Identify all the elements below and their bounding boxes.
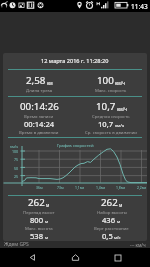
staticText: 800 [30,215,44,225]
button[interactable]: Back [21,248,43,267]
staticText: 10,7 [96,100,116,113]
staticText: 75 [14,157,19,162]
button[interactable]: 2,58 [3,70,75,96]
staticText: 262 [28,196,45,209]
staticText: 10,7 [98,119,114,129]
staticText: 2,2км [137,185,147,190]
staticText: Верт расстояние [94,225,129,231]
staticText: 11:43 [131,2,148,11]
staticText: Перепад высот [23,209,55,215]
staticText: Время записи [24,113,54,119]
staticText: м [117,219,121,224]
staticText: 1,8км [116,185,126,190]
staticText: км/ч [115,80,125,86]
button[interactable]: Home [64,248,86,267]
staticText: Ср. скорость в движении [85,129,137,135]
staticText: м [46,202,50,208]
staticText: 25 [14,174,19,179]
staticText: 436 [102,215,116,225]
staticText: км [47,80,53,86]
staticText: График скоростей [57,143,94,149]
staticText: Набор высоты [97,209,127,215]
staticText: Средняя скорость [92,113,130,119]
staticText: м/с [114,235,121,240]
staticText: Макс. высота [25,225,53,231]
staticText: м [45,219,49,224]
button[interactable]: 262 [3,196,75,241]
staticText: м [119,202,123,208]
staticText: 00:14:26 [20,100,59,113]
staticText: Макс. скорость [95,87,127,93]
staticText: 100 [12,149,19,154]
button[interactable]: 262 [75,196,147,241]
staticText: 538 [30,231,44,241]
staticText: км/ч [10,144,19,149]
staticText: 1,4км [96,185,106,190]
button[interactable]: 00:14:26 [3,97,75,137]
staticText: км/ч [115,123,125,128]
staticText: 1,1км [75,185,85,190]
staticText: Длина трека [26,87,53,93]
staticText: 73м [57,185,64,190]
staticText: м [45,235,49,240]
button[interactable]: 100 [75,70,147,96]
staticText: 00:14:24 [24,119,55,129]
staticText: --- км/ч [130,242,146,248]
staticText: км/ч [117,106,127,112]
staticText: Время в движении [19,129,59,135]
button[interactable]: 10,7 [75,97,147,137]
staticText: 50 [14,166,19,171]
staticText: 12 марта 2016 г. 11:28:20 [41,57,109,65]
staticText: 100 [97,74,114,87]
button[interactable]: Recent apps [107,248,129,267]
staticText: 262 [101,196,118,209]
staticText: 0,5 [102,231,113,241]
staticText: 2,58 [26,74,46,87]
staticText: Ждем GPS [4,241,29,248]
staticText: 36м [36,185,43,190]
